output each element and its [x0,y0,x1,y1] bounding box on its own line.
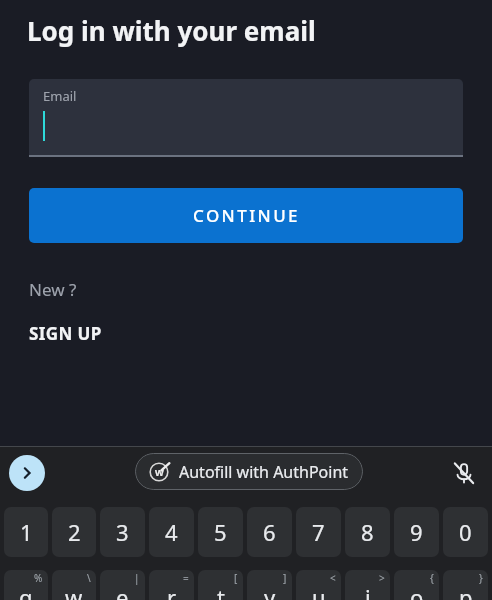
button[interactable]: { [394,570,439,600]
button[interactable]: 0 [443,507,488,557]
staticText: ] [283,571,287,585]
staticText: \ [87,571,91,585]
staticText: 0 [459,517,472,547]
button[interactable]: Voice input off [446,455,482,491]
staticText: i [365,582,371,600]
staticText: 4 [165,517,178,547]
button[interactable]: ] [247,570,292,600]
button[interactable]: < [296,570,341,600]
button[interactable]: = [149,570,194,600]
button[interactable]: 4 [149,507,194,557]
button[interactable]: SIGN UP [29,322,102,345]
staticText: < [330,571,336,585]
staticText: Autofill with AuthPoint [179,461,349,483]
staticText: e [116,582,129,600]
staticText: = [183,571,189,585]
button[interactable]: 7 [296,507,341,557]
button[interactable]: W [135,453,363,490]
staticText: New ? [29,278,77,301]
staticText: q [19,582,33,600]
staticText: 3 [116,517,129,547]
staticText: SIGN UP [29,322,102,345]
staticText: Log in with your email [27,13,316,48]
staticText: | [134,571,140,585]
button[interactable]: 8 [345,507,390,557]
button[interactable]: 9 [394,507,439,557]
staticText: 7 [312,517,325,547]
staticText: Email [43,87,77,105]
button[interactable]: 5 [198,507,243,557]
staticText: % [34,571,43,585]
staticText: r [167,582,177,600]
button[interactable]: 3 [100,507,145,557]
button[interactable]: [ [198,570,243,600]
staticText: p [459,582,473,600]
staticText: CONTINUE [193,204,300,227]
staticText: 6 [263,517,276,547]
staticText: [ [234,571,238,585]
button[interactable]: | [100,570,145,600]
button[interactable]: CONTINUE [29,188,463,243]
button[interactable]: 2 [52,507,96,557]
staticText: u [312,582,326,600]
button[interactable]: 1 [4,507,48,557]
staticText: W [155,466,164,478]
staticText: y [264,582,276,600]
button[interactable]: > [345,570,390,600]
staticText: o [410,582,424,600]
staticText: 9 [410,517,423,547]
button[interactable]: \ [52,570,96,600]
staticText: 2 [68,517,81,547]
button[interactable]: Expand suggestions [9,455,45,491]
staticText: { [430,571,434,585]
staticText: 5 [214,517,227,547]
staticText: } [479,571,483,585]
staticText: 8 [361,517,374,547]
button[interactable]: } [443,570,488,600]
button[interactable]: 6 [247,507,292,557]
button[interactable]: Email [29,79,463,157]
staticText: t [217,582,225,600]
staticText: w [65,582,83,600]
staticText: > [379,571,385,585]
staticText: 1 [20,517,33,547]
button[interactable]: % [4,570,48,600]
